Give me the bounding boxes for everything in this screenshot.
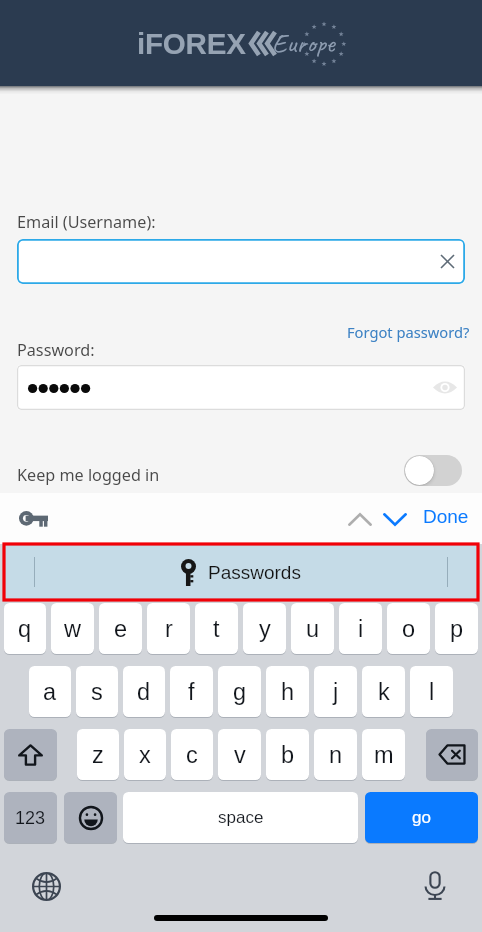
staticText: d (137, 679, 151, 705)
staticText: w (64, 616, 81, 642)
staticText: r (165, 616, 173, 642)
staticText: i (358, 616, 364, 642)
button[interactable]: k (362, 666, 405, 717)
staticText: v (234, 742, 246, 768)
staticText: t (213, 616, 220, 642)
button[interactable]: p (435, 603, 478, 654)
staticText: s (91, 679, 103, 705)
staticText: Europe (272, 26, 335, 60)
button[interactable]: b (266, 729, 309, 780)
staticText: l (429, 679, 435, 705)
staticText: p (450, 616, 464, 642)
button[interactable]: Done (423, 506, 469, 527)
button[interactable]: w (51, 603, 94, 654)
button[interactable]: Passwords (19, 511, 48, 527)
staticText: Keep me logged in (17, 464, 160, 486)
button[interactable]: Dictate (424, 871, 446, 901)
button[interactable]: f (170, 666, 213, 717)
staticText: b (281, 742, 295, 768)
button[interactable]: m (362, 729, 405, 780)
button[interactable]: z (77, 729, 119, 780)
button[interactable]: l (410, 666, 453, 717)
staticText: z (92, 742, 104, 768)
button[interactable]: h (266, 666, 309, 717)
button[interactable]: Clear text (441, 255, 454, 268)
button[interactable]: d (123, 666, 165, 717)
button[interactable]: r (147, 603, 190, 654)
staticText: k (378, 679, 390, 705)
button[interactable]: Show password (17, 365, 465, 410)
staticText: j (333, 679, 339, 705)
staticText: m (374, 742, 394, 768)
button[interactable] (404, 455, 462, 486)
button[interactable]: Emoji (64, 792, 117, 843)
button[interactable]: Show password (433, 379, 457, 396)
button[interactable]: q (4, 603, 46, 654)
button[interactable]: Forgot password? (347, 322, 470, 342)
button[interactable]: n (314, 729, 357, 780)
staticText: a (43, 679, 57, 705)
staticText: 123 (15, 808, 46, 828)
staticText: Passwords (208, 562, 301, 583)
staticText: u (306, 616, 320, 642)
button[interactable]: e (99, 603, 142, 654)
staticText: space (218, 808, 264, 827)
button[interactable]: Next field (383, 513, 407, 526)
staticText: go (412, 808, 431, 827)
button[interactable]: 123 (4, 792, 57, 843)
button[interactable]: space (123, 792, 358, 843)
staticText: Email (Username): (17, 211, 156, 233)
staticText: Password: (17, 339, 95, 361)
button[interactable]: Change keyboard (32, 872, 61, 901)
staticText: x (139, 742, 151, 768)
button[interactable]: Shift (4, 729, 57, 780)
button[interactable]: c (171, 729, 213, 780)
staticText: n (329, 742, 343, 768)
staticText: f (188, 679, 195, 705)
button[interactable]: u (291, 603, 334, 654)
staticText: g (233, 679, 247, 705)
button[interactable]: j (314, 666, 357, 717)
button[interactable]: o (387, 603, 430, 654)
button[interactable]: go (365, 792, 478, 843)
button[interactable]: i (339, 603, 382, 654)
button[interactable]: Previous field (348, 513, 372, 526)
button[interactable]: s (76, 666, 118, 717)
staticText: q (18, 616, 32, 642)
staticText: y (259, 616, 271, 642)
button[interactable]: v (218, 729, 261, 780)
staticText: c (186, 742, 198, 768)
button[interactable]: g (218, 666, 261, 717)
staticText: e (114, 616, 128, 642)
button[interactable]: t (195, 603, 238, 654)
button[interactable]: Passwords (4, 544, 478, 600)
staticText: h (281, 679, 295, 705)
button[interactable]: Backspace (426, 729, 478, 780)
staticText: iFOREX (137, 27, 246, 60)
button[interactable]: a (29, 666, 71, 717)
button[interactable]: x (124, 729, 166, 780)
button[interactable]: y (243, 603, 286, 654)
button[interactable]: Clear text (17, 239, 465, 284)
staticText: o (402, 616, 416, 642)
